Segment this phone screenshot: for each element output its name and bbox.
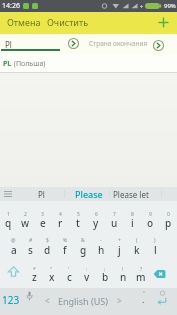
button[interactable]: #: [22, 236, 39, 262]
staticText: v: [84, 270, 90, 284]
staticText: +: [118, 237, 121, 244]
staticText: &: [81, 237, 85, 244]
button[interactable]: (: [128, 236, 146, 262]
button[interactable]: 9: [141, 201, 159, 236]
staticText: Pl: [38, 189, 45, 200]
staticText: k: [134, 243, 140, 257]
button[interactable]: Please let: [105, 187, 157, 201]
staticText: b: [102, 270, 109, 284]
button[interactable]: [156, 15, 170, 29]
staticText: 1: [7, 211, 10, 218]
button[interactable]: 7: [105, 201, 123, 236]
button[interactable]: [26, 288, 43, 315]
button[interactable]: Отмена: [0, 17, 41, 29]
staticText: g: [80, 243, 87, 257]
button[interactable]: ;: [96, 262, 114, 288]
staticText: *: [33, 266, 36, 273]
staticText: $: [46, 237, 49, 244]
button[interactable]: [0, 262, 26, 288]
staticText: ': [68, 266, 70, 273]
button[interactable]: [150, 262, 177, 288]
staticText: ;: [104, 266, 106, 273]
staticText: ?: [140, 266, 143, 273]
staticText: ": [143, 290, 146, 297]
button[interactable]: ?: [132, 262, 150, 288]
staticText: 6: [95, 211, 98, 218]
button[interactable]: +: [110, 236, 128, 262]
button[interactable]: ): [146, 236, 164, 262]
staticText: #: [29, 237, 33, 244]
button[interactable]: ': [60, 262, 78, 288]
button[interactable]: 4: [51, 201, 69, 236]
staticText: 99%: [164, 2, 176, 10]
staticText: (: [136, 237, 138, 244]
staticText: ": [50, 266, 53, 273]
staticText: y: [93, 216, 99, 230]
staticText: 123: [2, 293, 20, 307]
staticText: <: [45, 295, 50, 306]
staticText: s: [28, 243, 33, 257]
button[interactable]: [68, 38, 79, 49]
staticText: 3: [41, 211, 44, 218]
staticText: x: [49, 270, 55, 284]
button[interactable]: 0: [159, 201, 177, 236]
button[interactable]: 8: [123, 201, 141, 236]
staticText: .: [142, 293, 145, 305]
staticText: @: [11, 237, 16, 244]
button[interactable]: !: [114, 262, 132, 288]
staticText: Очистить: [47, 16, 89, 28]
button[interactable]: Please: [66, 187, 111, 201]
staticText: Отмена: [7, 16, 41, 28]
button[interactable]: <: [43, 288, 132, 315]
staticText: 7: [113, 211, 116, 218]
button[interactable]: 123: [0, 288, 26, 315]
button[interactable]: [150, 288, 177, 315]
staticText: PL: [3, 59, 12, 69]
staticText: p: [165, 216, 172, 230]
staticText: w: [21, 216, 30, 230]
button[interactable]: *: [26, 262, 43, 288]
staticText: m: [136, 270, 146, 284]
staticText: r: [58, 216, 63, 230]
button[interactable]: 6: [87, 201, 105, 236]
staticText: Pl: [5, 39, 12, 50]
button[interactable]: ": [132, 288, 150, 315]
staticText: c: [67, 270, 72, 284]
button[interactable]: 1: [0, 201, 17, 236]
button[interactable]: %: [56, 236, 74, 262]
button[interactable]: -: [92, 236, 110, 262]
button[interactable]: 5: [69, 201, 87, 236]
button[interactable]: $: [39, 236, 56, 262]
staticText: >: [117, 295, 122, 306]
staticText: u: [111, 216, 118, 230]
button[interactable]: Очистить: [41, 17, 89, 29]
button[interactable]: 2: [17, 201, 34, 236]
staticText: 0: [167, 211, 170, 218]
staticText: e: [40, 216, 46, 230]
staticText: h: [98, 243, 105, 257]
button[interactable]: [153, 40, 164, 51]
staticText: English (US): [58, 295, 108, 307]
staticText: ): [154, 237, 156, 244]
button[interactable]: @: [5, 236, 22, 262]
staticText: -: [100, 237, 102, 244]
button[interactable]: Pl: [23, 187, 59, 201]
staticText: i: [131, 216, 134, 230]
staticText: 2: [24, 211, 27, 218]
staticText: n: [120, 270, 127, 284]
button[interactable]: ": [43, 262, 60, 288]
staticText: !: [122, 266, 124, 273]
staticText: 14:26: [2, 1, 20, 11]
button[interactable]: 3: [34, 201, 51, 236]
staticText: j: [118, 243, 121, 257]
staticText: Please let: [113, 189, 149, 200]
staticText: 9: [149, 211, 152, 218]
staticText: t: [76, 216, 80, 230]
staticText: l: [154, 243, 157, 257]
button[interactable]: PL: [3, 59, 46, 69]
staticText: Please: [75, 188, 103, 200]
staticText: :: [86, 266, 88, 273]
button[interactable]: &: [74, 236, 92, 262]
staticText: 8: [131, 211, 134, 218]
button[interactable]: :: [78, 262, 96, 288]
